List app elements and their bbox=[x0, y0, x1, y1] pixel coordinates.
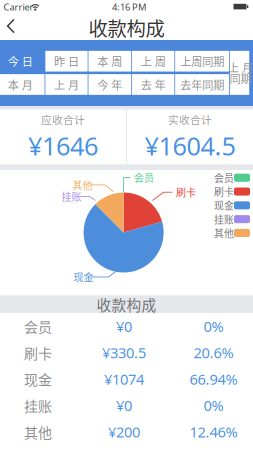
staticText: ¥200 bbox=[108, 422, 140, 442]
staticText: 现金 bbox=[24, 369, 52, 389]
staticText: 应收合计 bbox=[41, 111, 85, 127]
button[interactable]: 本 周 bbox=[88, 51, 131, 72]
staticText: 66.94% bbox=[189, 369, 237, 389]
staticText: 今 年 bbox=[97, 76, 122, 93]
staticText: 实收合计 bbox=[168, 111, 212, 127]
staticText: 收款构成 bbox=[88, 13, 164, 41]
staticText: 0% bbox=[203, 316, 223, 336]
button[interactable]: 今 日 bbox=[0, 51, 45, 72]
staticText: 其他 bbox=[72, 178, 92, 192]
staticText: ¥1074 bbox=[104, 369, 144, 389]
button[interactable]: 上周同期 bbox=[175, 51, 229, 72]
staticText: 上 月 bbox=[54, 76, 79, 93]
button[interactable]: 会员 bbox=[0, 313, 253, 339]
staticText: 0% bbox=[203, 396, 223, 415]
staticText: 20.6% bbox=[193, 343, 233, 362]
staticText: 挂账 bbox=[61, 189, 81, 204]
staticText: 4:16 PM bbox=[112, 1, 146, 13]
button[interactable]: 现金 bbox=[0, 366, 253, 392]
button[interactable]: 本 月 bbox=[0, 74, 45, 95]
button[interactable]: 刷卡 bbox=[0, 339, 253, 366]
staticText: Carrier bbox=[3, 1, 33, 13]
button[interactable]: 去 年 bbox=[132, 74, 174, 95]
button[interactable]: Back bbox=[0, 14, 26, 40]
staticText: 昨 日 bbox=[54, 53, 79, 69]
staticText: 去年同期 bbox=[180, 76, 224, 93]
staticText: ¥1604.5 bbox=[144, 129, 235, 163]
staticText: 现金 bbox=[214, 198, 234, 212]
staticText: 同期 bbox=[229, 70, 251, 86]
staticText: 收款构成 bbox=[96, 294, 156, 315]
button[interactable]: 昨 日 bbox=[45, 51, 88, 72]
staticText: 本 周 bbox=[97, 53, 122, 69]
staticText: 现金 bbox=[73, 270, 93, 284]
staticText: 刷卡 bbox=[176, 185, 196, 199]
staticText: 上 月 bbox=[228, 59, 253, 75]
staticText: ¥0 bbox=[116, 396, 132, 415]
staticText: 刷卡 bbox=[24, 342, 52, 363]
button[interactable]: 上 周 bbox=[132, 51, 174, 72]
button[interactable]: 上 月 bbox=[230, 51, 249, 95]
staticText: 今 日 bbox=[8, 53, 33, 69]
staticText: 其他 bbox=[24, 422, 52, 442]
button[interactable]: 去年同期 bbox=[175, 74, 229, 95]
staticText: 其他 bbox=[214, 226, 234, 240]
staticText: 会员 bbox=[214, 171, 234, 185]
staticText: ¥330.5 bbox=[102, 343, 146, 362]
staticText: 上周同期 bbox=[180, 53, 224, 69]
button[interactable]: 上 月 bbox=[45, 74, 88, 95]
staticText: ¥0 bbox=[116, 316, 132, 336]
staticText: 刷卡 bbox=[214, 184, 234, 199]
staticText: 会员 bbox=[134, 170, 154, 185]
staticText: 12.46% bbox=[189, 422, 237, 442]
button[interactable]: 今 年 bbox=[88, 74, 131, 95]
staticText: ¥1646 bbox=[28, 129, 98, 163]
button[interactable]: 其他 bbox=[0, 419, 253, 445]
staticText: 上 周 bbox=[141, 53, 166, 69]
staticText: 挂账 bbox=[214, 212, 234, 226]
staticText: 挂账 bbox=[24, 395, 52, 416]
button[interactable]: 挂账 bbox=[0, 392, 253, 419]
staticText: 去 年 bbox=[141, 76, 166, 93]
staticText: 本 月 bbox=[8, 76, 33, 93]
staticText: 会员 bbox=[24, 316, 52, 336]
